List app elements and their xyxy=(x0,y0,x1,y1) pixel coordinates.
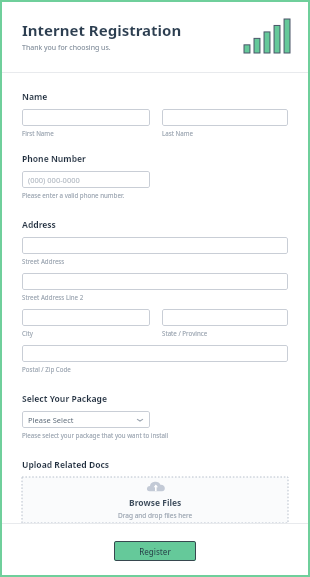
staticText: Name xyxy=(22,91,48,103)
staticText: Please Select xyxy=(28,415,74,425)
staticText: Register xyxy=(139,546,171,557)
staticText: Thank you for choosing us. xyxy=(22,43,111,53)
button[interactable]: State / Province xyxy=(162,309,288,326)
staticText: City xyxy=(22,329,33,337)
staticText: Drag and drop files here xyxy=(118,511,193,520)
staticText: Last Name xyxy=(162,129,193,137)
button[interactable]: Select Your Package xyxy=(22,411,150,428)
staticText: First Name xyxy=(22,129,54,137)
staticText: Postal / Zip Code xyxy=(22,365,71,373)
other: Signal strength xyxy=(244,19,290,53)
staticText: Internet Registration xyxy=(22,20,182,40)
button[interactable]: Street Address Line 2 xyxy=(22,273,288,290)
staticText: Upload Related Docs xyxy=(22,459,110,471)
button[interactable]: City xyxy=(22,309,150,326)
button[interactable]: Postal / Zip Code xyxy=(22,345,288,362)
button[interactable]: Browse Files upload area xyxy=(22,477,288,523)
staticText: Browse Files xyxy=(129,497,182,509)
staticText: Address xyxy=(22,219,56,231)
staticText: Street Address xyxy=(22,257,65,265)
staticText: Street Address Line 2 xyxy=(22,293,84,301)
staticText: State / Province xyxy=(162,329,208,337)
staticText: Please select your package that you want… xyxy=(22,431,169,439)
button[interactable]: First Name xyxy=(22,109,150,126)
staticText: Select Your Package xyxy=(22,393,107,405)
button[interactable]: Last Name xyxy=(162,109,288,126)
staticText: Phone Number xyxy=(22,153,86,165)
button[interactable]: Phone Number xyxy=(22,171,150,188)
staticText: (000) 000-0000 xyxy=(28,175,80,185)
staticText: Please enter a valid phone number. xyxy=(22,191,125,199)
button[interactable]: Register xyxy=(114,541,196,561)
button[interactable]: Street Address xyxy=(22,237,288,254)
